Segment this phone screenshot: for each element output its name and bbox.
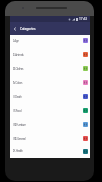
button[interactable]: II. Animals xyxy=(10,49,90,63)
staticText: VIII. General xyxy=(13,137,26,141)
button[interactable]: IV. Colors xyxy=(10,77,90,91)
staticText: 17:43 xyxy=(79,17,88,21)
staticText: IX. Health xyxy=(13,149,23,153)
staticText: III. Clothes xyxy=(13,67,24,71)
staticText: V. Death xyxy=(13,95,22,99)
staticText: VI. Food xyxy=(13,109,22,113)
staticText: I. Age xyxy=(13,39,19,43)
staticText: II. Animals xyxy=(13,53,24,57)
button[interactable]: VII. Furniture xyxy=(10,119,90,133)
button[interactable]: Back xyxy=(10,22,20,35)
staticText: Categories xyxy=(20,27,36,31)
button[interactable]: VIII. General xyxy=(10,133,90,147)
button[interactable]: IX. Health xyxy=(10,147,90,158)
button[interactable]: I. Age xyxy=(10,35,90,49)
button[interactable]: III. Clothes xyxy=(10,63,90,77)
button[interactable]: V. Death xyxy=(10,91,90,105)
button[interactable]: VI. Food xyxy=(10,105,90,119)
staticText: IV. Colors xyxy=(13,81,23,85)
staticText: VII. Furniture xyxy=(13,123,26,127)
